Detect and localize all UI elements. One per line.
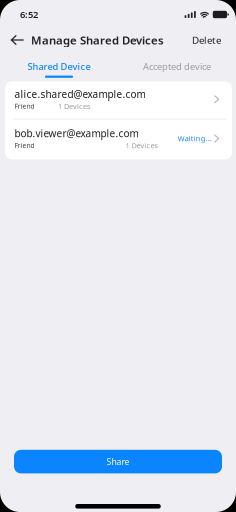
staticText: Waiting...	[178, 133, 212, 143]
staticText: Accepted device	[143, 60, 211, 73]
button[interactable]: bob.viewer@example.com	[5, 120, 232, 159]
staticText: Share	[106, 456, 129, 467]
button[interactable]: Delete	[189, 29, 224, 51]
button[interactable]: Share	[14, 450, 222, 473]
button[interactable]: Shared Device	[0, 60, 118, 78]
staticText: 1 Devices	[125, 140, 158, 150]
button[interactable]: Back	[8, 29, 26, 51]
staticText: Delete	[192, 33, 221, 47]
staticText: Friend	[14, 102, 34, 111]
staticText: Shared Device	[27, 60, 90, 73]
staticText: Manage Shared Devices	[31, 32, 164, 48]
button[interactable]: Accepted device	[118, 60, 236, 78]
staticText: Friend	[14, 141, 34, 150]
staticText: 6:52	[20, 8, 38, 21]
staticText: bob.viewer@example.com	[14, 127, 138, 140]
staticText: 1 Devices	[58, 101, 91, 111]
staticText: alice.shared@example.com	[14, 87, 145, 101]
button[interactable]: alice.shared@example.com	[5, 81, 232, 119]
